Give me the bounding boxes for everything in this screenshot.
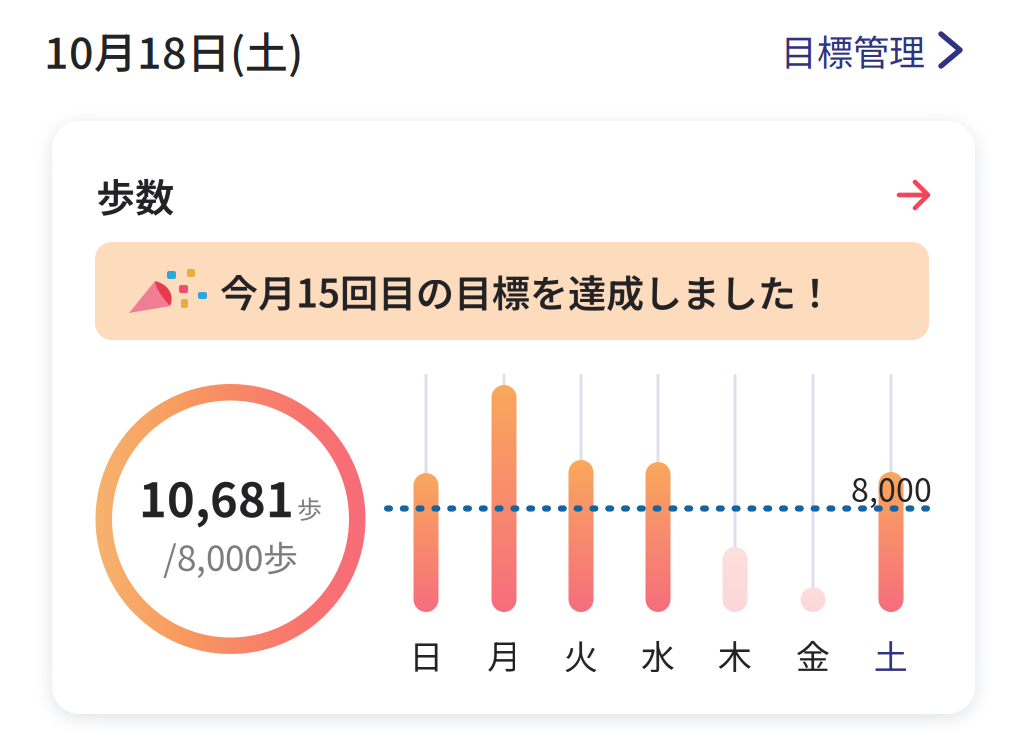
staticText: 10,681 — [139, 463, 294, 531]
button[interactable]: 歩数 — [96, 171, 928, 219]
staticText: 水 — [641, 630, 675, 679]
staticText: 歩 — [297, 489, 322, 526]
staticText: 月 — [487, 630, 521, 679]
staticText: /8,000歩 — [163, 531, 298, 581]
button[interactable]: 目標管理 — [781, 22, 960, 78]
button[interactable]: 10月18日(土) — [44, 22, 303, 78]
staticText: 歩数 — [96, 167, 174, 223]
staticText: 今月15回目の目標を達成しました！ — [220, 263, 834, 318]
staticText: 目標管理 — [781, 24, 925, 76]
staticText: 日 — [409, 630, 443, 679]
staticText: 土 — [874, 630, 908, 679]
staticText: 火 — [564, 630, 598, 679]
staticText: 金 — [796, 630, 830, 679]
staticText: 8,000 — [851, 465, 932, 511]
staticText: 10月18日(土) — [44, 19, 303, 81]
staticText: 木 — [718, 630, 752, 679]
